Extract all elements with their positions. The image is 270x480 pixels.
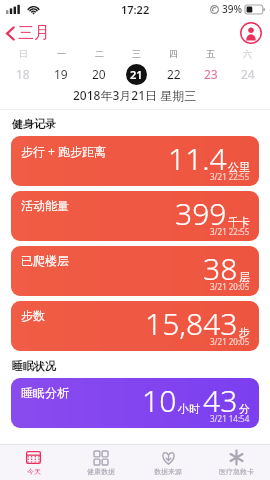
staticText: 步数 [21, 308, 45, 323]
button[interactable]: 活动能量 [11, 191, 259, 241]
staticText: 三月 [18, 23, 50, 43]
button[interactable]: 步数 [11, 301, 259, 351]
staticText: 21 [130, 67, 143, 82]
staticText: 千卡 [228, 215, 250, 229]
button[interactable]: 睡眠分析 [11, 378, 259, 428]
staticText: 22 [167, 66, 181, 82]
button[interactable]: 19 [42, 63, 80, 85]
staticText: 11.4 [168, 138, 227, 179]
staticText: 五 [206, 48, 215, 59]
button[interactable]: 20 [80, 63, 118, 85]
button[interactable]: 步行 + 跑步距离 [11, 136, 259, 186]
staticText: 24 [241, 66, 255, 82]
button[interactable]: 三月 [0, 19, 58, 47]
staticText: 23 [204, 66, 218, 82]
staticText: 3/21 14:54 [210, 413, 250, 424]
staticText: 3/21 20:05 [210, 281, 250, 292]
staticText: 20 [92, 66, 106, 82]
staticText: 活动能量 [21, 198, 69, 213]
button[interactable]: 个人资料 [240, 22, 262, 44]
staticText: 19 [54, 66, 68, 82]
staticText: 睡眠分析 [21, 385, 69, 400]
button[interactable]: 数据来源 [134, 445, 202, 480]
button[interactable]: 23 [192, 63, 229, 85]
staticText: 三 [132, 48, 141, 59]
button[interactable]: 健康数据 [67, 445, 134, 480]
button[interactable]: 今天 [0, 445, 67, 480]
button[interactable]: 医疗急救卡 [202, 445, 270, 480]
button[interactable]: 已爬楼层 [11, 246, 259, 296]
staticText: 3/21 22:55 [210, 171, 250, 182]
staticText: 数据来源 [154, 467, 182, 476]
button[interactable]: 21 [118, 63, 155, 85]
staticText: 3/21 20:05 [210, 336, 250, 347]
staticText: 睡眠状况 [12, 359, 56, 373]
button[interactable]: 24 [229, 63, 266, 85]
staticText: 步行 + 跑步距离 [21, 143, 107, 159]
staticText: 小时 [178, 402, 200, 416]
staticText: 二 [95, 48, 104, 59]
staticText: 已爬楼层 [21, 253, 69, 268]
staticText: 38 [203, 248, 238, 289]
staticText: 一 [57, 48, 66, 59]
staticText: 层 [239, 270, 250, 284]
staticText: 今天 [27, 467, 41, 476]
staticText: 日 [19, 48, 28, 59]
staticText: 17:22 [121, 2, 150, 17]
staticText: 399 [175, 193, 227, 234]
staticText: 四 [169, 48, 178, 59]
staticText: 健康数据 [87, 467, 115, 476]
staticText: 公里 [228, 160, 250, 174]
staticText: 43 [203, 380, 238, 421]
staticText: 18 [16, 66, 30, 82]
button[interactable]: 22 [155, 63, 192, 85]
staticText: 15,843 [145, 303, 238, 344]
staticText: 医疗急救卡 [219, 467, 254, 476]
staticText: 10 [142, 380, 177, 421]
button[interactable]: 18 [4, 63, 42, 85]
staticText: 2018年3月21日 星期三 [73, 87, 197, 103]
staticText: 3/21 22:55 [210, 226, 250, 237]
staticText: 步 [239, 325, 250, 339]
staticText: 六 [243, 48, 252, 59]
staticText: 分 [239, 402, 250, 416]
staticText: 39% [222, 2, 242, 16]
staticText: 健身记录 [12, 117, 56, 131]
